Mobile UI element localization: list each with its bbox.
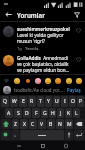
button[interactable]: Emoji reaction — [53, 76, 62, 85]
staticText: E — [22, 98, 25, 105]
button[interactable]: lsodbelic/Ae cloud yorum yaz... — [14, 87, 64, 93]
staticText: U — [55, 98, 59, 105]
button[interactable]: Emoji reaction — [12, 76, 21, 85]
button[interactable]: Home — [39, 142, 47, 150]
staticText: X — [23, 121, 26, 128]
button[interactable]: Voice input — [65, 130, 73, 140]
button[interactable]: G — [41, 108, 48, 118]
button[interactable]: I — [61, 96, 68, 107]
button[interactable]: Paylaş — [66, 87, 82, 93]
staticText: L — [75, 110, 78, 117]
staticText: K — [67, 110, 71, 117]
button[interactable]: Enter — [74, 130, 84, 140]
button[interactable]: M — [65, 119, 73, 129]
staticText: A — [7, 110, 11, 117]
staticText: Yanıtla — [25, 46, 39, 51]
staticText: sueshimmerkreuzpokel Lovel ki yolda geli… — [17, 26, 72, 44]
button[interactable]: Filter — [71, 9, 82, 20]
staticText: 1g — [17, 46, 22, 51]
button[interactable]: Emoji reaction — [43, 76, 52, 85]
button[interactable]: Emoji keyboard — [1, 130, 10, 140]
staticText: Yorumlar — [17, 11, 45, 19]
button[interactable]: K — [65, 108, 72, 118]
button[interactable]: P — [77, 96, 84, 107]
button[interactable]: T — [37, 96, 44, 107]
button[interactable]: Z — [12, 119, 19, 129]
staticText: I — [64, 98, 66, 105]
staticText: GollaAddis Annedmadi ve çok başlatılıcı,… — [17, 55, 72, 73]
button[interactable]: Like — [74, 55, 82, 63]
button[interactable]: Like — [74, 26, 82, 34]
staticText: S — [17, 110, 20, 117]
staticText: Y — [47, 98, 50, 105]
staticText: M — [67, 121, 72, 128]
button[interactable]: Emoji reaction — [74, 76, 83, 85]
button[interactable]: L — [73, 108, 80, 118]
button[interactable]: H — [49, 108, 56, 118]
button[interactable]: W — [10, 96, 18, 107]
staticText: F — [35, 110, 38, 117]
button[interactable]: Emoji reaction — [33, 76, 42, 85]
button[interactable]: J — [57, 108, 64, 118]
button[interactable]: O — [69, 96, 76, 107]
staticText: O — [71, 98, 75, 105]
button[interactable]: U — [53, 96, 60, 107]
staticText: V — [40, 121, 44, 128]
staticText: P — [79, 98, 83, 105]
staticText: J — [60, 110, 62, 117]
button[interactable]: Yanıtla — [25, 46, 39, 51]
button[interactable]: Q — [1, 96, 9, 107]
button[interactable]: Back — [15, 142, 23, 150]
staticText: lsodbelic/Ae cloud yorum yaz... — [14, 87, 64, 93]
staticText: H — [51, 110, 55, 117]
button[interactable]: N — [56, 119, 64, 129]
button[interactable]: Shift — [1, 119, 11, 129]
button[interactable]: Heart reaction — [2, 76, 11, 85]
button[interactable]: Emoji reaction — [64, 76, 73, 85]
staticText: W — [12, 98, 17, 105]
button[interactable]: V — [38, 119, 46, 129]
button[interactable]: Recents — [62, 142, 70, 150]
button[interactable]: F — [32, 108, 40, 118]
button[interactable]: A — [5, 108, 13, 118]
button[interactable]: sueshimmerkreuzpokel Lovel ki yolda geli… — [0, 22, 85, 51]
button[interactable]: Back — [3, 9, 14, 20]
staticText: G — [43, 110, 47, 117]
button[interactable]: Space — [20, 130, 64, 140]
staticText: T — [39, 98, 42, 105]
button[interactable]: Comma — [11, 130, 19, 140]
staticText: N — [58, 121, 62, 128]
staticText: B — [49, 121, 53, 128]
button[interactable]: Y — [45, 96, 52, 107]
staticText: R — [30, 98, 34, 105]
staticText: Paylaş — [67, 87, 81, 93]
button[interactable]: E — [19, 96, 27, 107]
button[interactable]: D — [23, 108, 31, 118]
staticText: Z — [14, 121, 17, 128]
button[interactable]: B — [47, 119, 55, 129]
button[interactable]: Emoji reaction — [23, 76, 32, 85]
staticText: Q — [3, 98, 7, 105]
button[interactable]: R — [28, 96, 36, 107]
button[interactable]: S — [14, 108, 22, 118]
button[interactable]: Backspace — [74, 119, 84, 129]
staticText: D — [25, 110, 29, 117]
button[interactable]: C — [29, 119, 37, 129]
staticText: C — [31, 121, 35, 128]
button[interactable]: X — [20, 119, 28, 129]
button[interactable]: GollaAddis Annedmadi ve çok başlatılıcı,… — [0, 51, 85, 74]
